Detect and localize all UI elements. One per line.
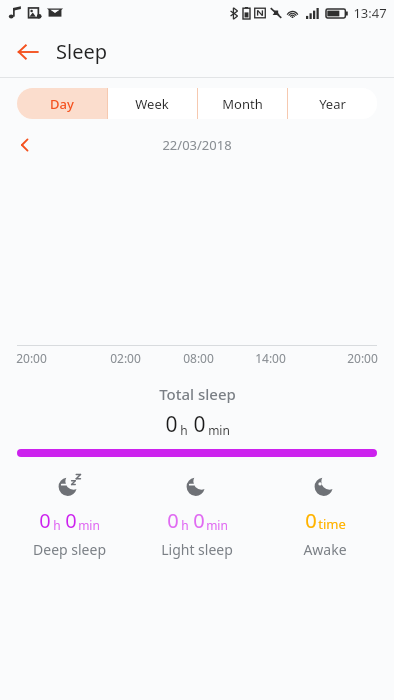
staticText: Year [319, 95, 346, 113]
staticText: 14:00 [255, 350, 286, 366]
staticText: min [206, 517, 228, 533]
staticText: Awake [303, 540, 347, 559]
staticText: 0 [305, 507, 317, 534]
button[interactable]: Day [17, 88, 107, 119]
button[interactable]: Back [8, 32, 48, 72]
staticText: h [180, 422, 188, 438]
staticText: min [208, 422, 230, 438]
staticText: 08:00 [183, 350, 214, 366]
button[interactable]: 0 [266, 473, 384, 559]
staticText: 20:00 [347, 350, 378, 366]
button[interactable]: Year [287, 88, 377, 119]
staticText: 22/03/2018 [162, 136, 232, 154]
staticText: 0 [65, 507, 77, 534]
staticText: 0 [193, 410, 206, 439]
staticText: Day [50, 95, 74, 113]
staticText: 02:00 [110, 350, 141, 366]
staticText: 0 [167, 507, 179, 534]
staticText: Sleep [56, 38, 107, 65]
staticText: Total sleep [159, 384, 236, 404]
staticText: Deep sleep [33, 540, 106, 559]
button[interactable]: 0 [10, 473, 128, 559]
staticText: Light sleep [161, 540, 233, 559]
button[interactable]: Month [197, 88, 287, 119]
button[interactable]: 0 [138, 473, 256, 559]
staticText: 0 [39, 507, 51, 534]
staticText: 0 [193, 507, 205, 534]
staticText: 13:47 [353, 4, 387, 22]
staticText: h [53, 517, 61, 533]
staticText: time [318, 515, 346, 533]
staticText: Month [222, 95, 263, 113]
staticText: h [181, 517, 189, 533]
button[interactable]: Week [107, 88, 197, 119]
staticText: min [78, 517, 100, 533]
staticText: 0 [165, 410, 178, 439]
staticText: 20:00 [16, 350, 47, 366]
staticText: Week [135, 95, 169, 113]
button[interactable]: Previous day [8, 130, 42, 160]
